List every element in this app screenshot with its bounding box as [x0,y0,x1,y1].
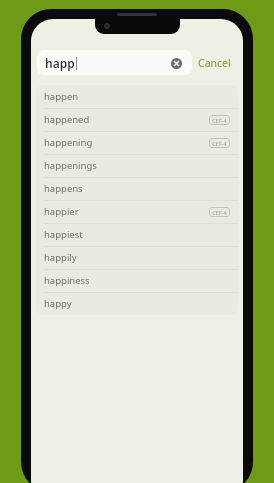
button[interactable]: happening [36,131,238,154]
staticText: happier [44,205,79,218]
staticText: happiest [44,228,83,241]
staticText: happen [44,90,79,103]
button[interactable]: happy [36,292,238,315]
staticText: happily [44,251,77,264]
staticText: happy [44,297,72,310]
staticText: happens [44,182,83,195]
staticText: happ [45,55,75,71]
button[interactable]: happ [37,50,192,75]
button[interactable]: Cancel [192,52,237,74]
staticText: happenings [44,159,97,172]
button[interactable]: happily [36,246,238,269]
button[interactable]: happen [36,85,238,108]
button[interactable]: Clear search text [168,55,184,71]
button[interactable]: happened [36,108,238,131]
staticText: CEF-4 [212,117,227,124]
staticText: Cancel [198,56,231,70]
staticText: happening [44,136,93,149]
staticText: happiness [44,274,90,287]
button[interactable]: happenings [36,154,238,177]
button[interactable]: happiness [36,269,238,292]
button[interactable]: happens [36,177,238,200]
button[interactable]: happier [36,200,238,223]
button[interactable]: happiest [36,223,238,246]
staticText: happened [44,113,90,126]
staticText: CEF-4 [212,140,227,147]
staticText: CEF-4 [212,209,227,216]
